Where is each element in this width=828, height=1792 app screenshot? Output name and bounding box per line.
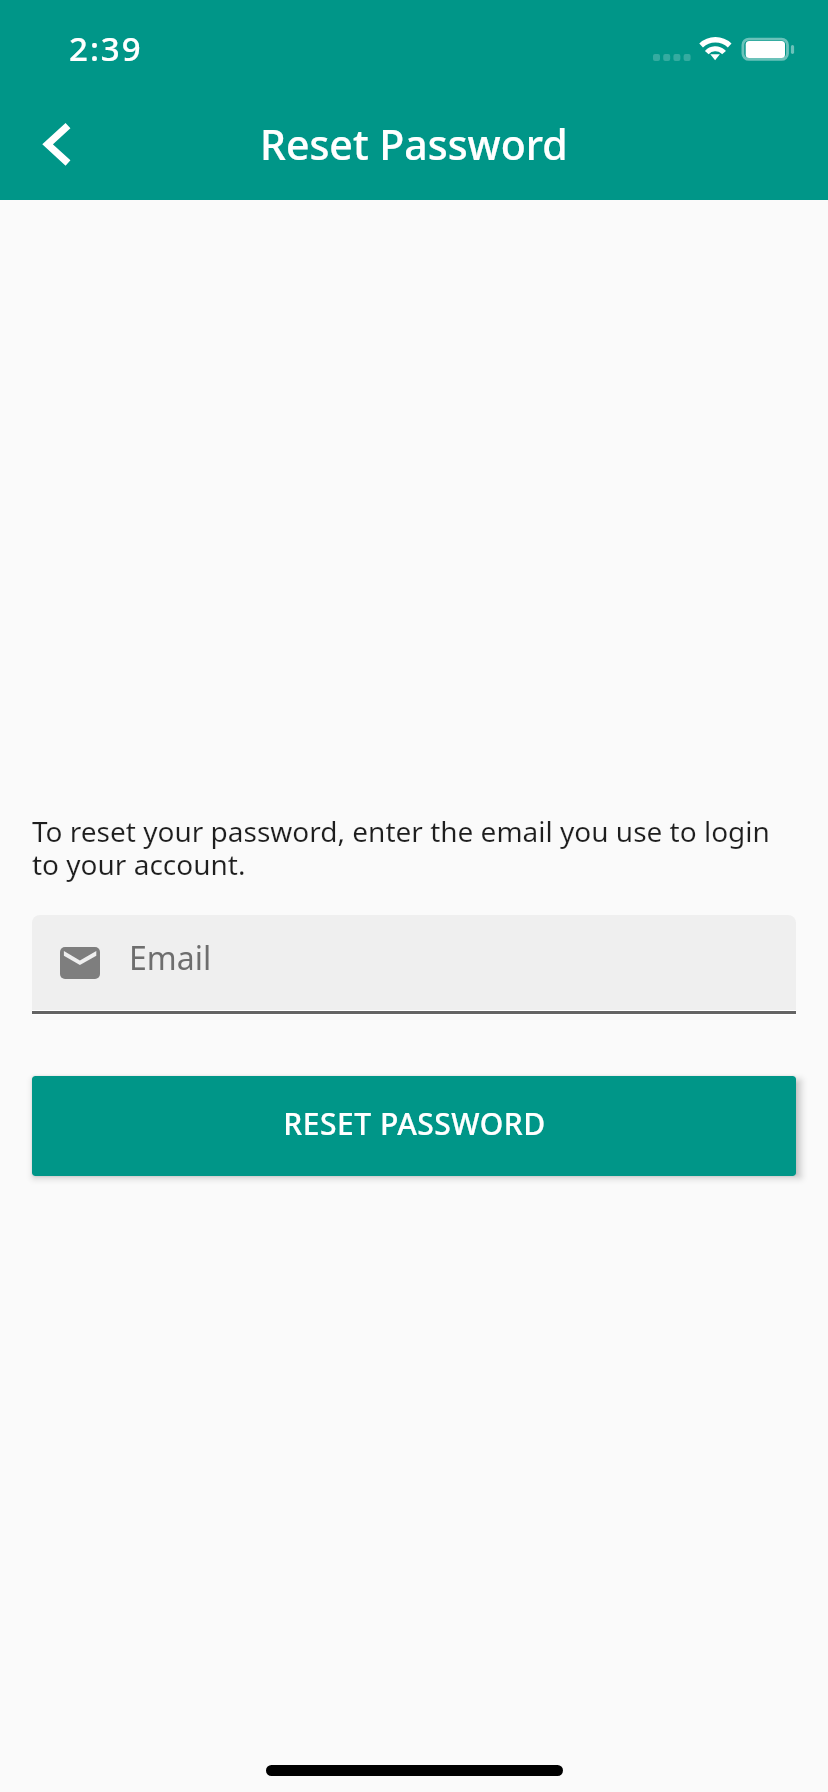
staticText: 2:39 [69, 26, 143, 71]
button[interactable]: RESET PASSWORD [32, 1076, 796, 1176]
button[interactable]: Email input field [32, 915, 796, 1015]
button[interactable]: Navigate back [14, 112, 74, 172]
staticText: To reset your password, enter the email … [32, 812, 796, 883]
other: Signal, wifi and battery status [640, 30, 810, 70]
staticText: Reset Password [260, 116, 568, 172]
staticText: Email [129, 936, 212, 980]
staticText: RESET PASSWORD [283, 1103, 546, 1144]
